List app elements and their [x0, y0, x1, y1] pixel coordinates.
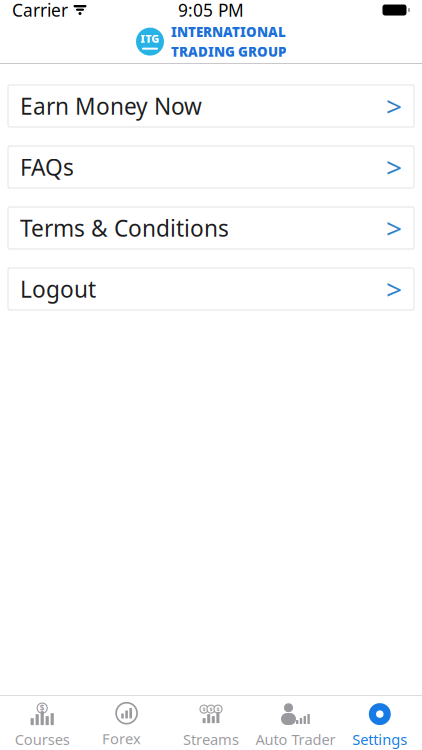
staticText: Courses: [15, 730, 70, 749]
staticText: ITG: [140, 31, 159, 46]
staticText: Logout: [20, 274, 96, 304]
staticText: Terms & Conditions: [20, 213, 229, 243]
button[interactable]: Logout: [8, 268, 414, 310]
staticText: TRADING GROUP: [171, 43, 286, 60]
staticText: Settings: [352, 730, 407, 749]
button[interactable]: Auto Trader: [253, 696, 338, 750]
button[interactable]: Terms & Conditions: [8, 207, 414, 249]
staticText: >: [386, 270, 402, 308]
button[interactable]: Earn Money Now: [8, 85, 414, 127]
staticText: >: [386, 87, 402, 125]
staticText: FAQs: [20, 152, 74, 182]
staticText: $: [216, 706, 219, 713]
staticText: $: [209, 706, 212, 713]
staticText: 9:05 PM: [178, 0, 244, 21]
staticText: Carrier: [12, 0, 68, 21]
button[interactable]: Forex Signals: [84, 696, 169, 750]
button[interactable]: $: [169, 696, 253, 750]
button[interactable]: $: [0, 696, 84, 750]
staticText: >: [386, 148, 402, 186]
button[interactable]: Settings: [338, 696, 422, 750]
staticText: $: [40, 703, 45, 713]
staticText: >: [386, 209, 402, 247]
staticText: Forex Signals: [102, 729, 151, 750]
button[interactable]: FAQs: [8, 146, 414, 188]
staticText: Streams: [183, 730, 239, 749]
staticText: INTERNATIONAL: [171, 23, 286, 41]
staticText: Auto Trader: [255, 730, 335, 749]
staticText: $: [202, 706, 205, 713]
staticText: Earn Money Now: [20, 91, 202, 121]
